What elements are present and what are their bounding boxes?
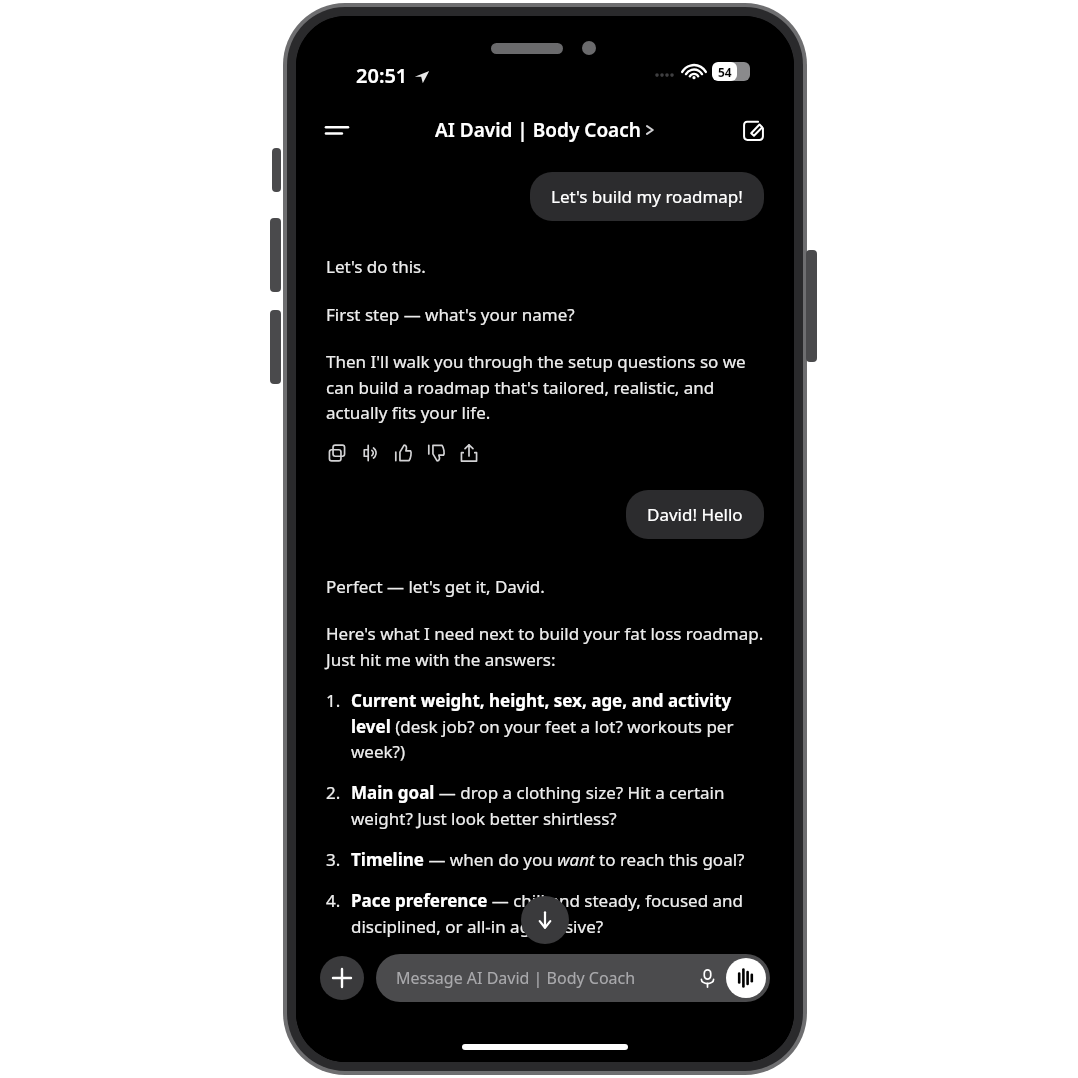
staticText: Timeline — when do you want to reach thi… <box>351 848 745 871</box>
staticText: David! Hello <box>647 503 743 526</box>
staticText: Let's build my roadmap! <box>551 185 743 208</box>
button[interactable]: New chat <box>730 107 776 153</box>
button[interactable]: AI David | Body Coach <box>435 117 655 143</box>
button[interactable]: Voice mode <box>726 958 766 998</box>
staticText: Then I'll walk you through the setup que… <box>326 350 764 424</box>
staticText: AI David | Body Coach <box>435 117 641 143</box>
button[interactable]: Share <box>458 442 480 464</box>
staticText: 3. <box>326 848 341 871</box>
staticText: Message AI David | Body Coach <box>396 967 636 989</box>
button[interactable]: Copy <box>326 442 348 464</box>
button[interactable]: Read aloud <box>359 442 381 464</box>
button[interactable]: Bad response <box>425 442 447 464</box>
staticText: 1. <box>326 689 341 712</box>
button[interactable]: Open menu <box>314 107 360 153</box>
staticText: Pace preference — chill and steady, focu… <box>351 889 764 938</box>
button[interactable]: Message AI David | Body Coach <box>376 954 770 1002</box>
staticText: Main goal — drop a clothing size? Hit a … <box>351 781 764 830</box>
button[interactable]: Let's build my roadmap! <box>530 172 764 221</box>
button[interactable]: David! Hello <box>626 490 764 539</box>
staticText: Perfect — let's get it, David. <box>326 575 545 598</box>
staticText: Let's do this. <box>326 255 426 278</box>
staticText: First step — what's your name? <box>326 303 575 326</box>
staticText: 4. <box>326 889 341 912</box>
staticText: Any history of dieting challenges I shou… <box>351 956 699 979</box>
button[interactable]: Dictate <box>690 961 724 995</box>
button[interactable]: Scroll to bottom <box>521 896 569 944</box>
staticText: 2. <box>326 781 341 804</box>
staticText: Here's what I need next to build your fa… <box>326 622 764 671</box>
staticText: 54 <box>718 64 732 80</box>
staticText: 5. <box>326 956 341 979</box>
staticText: 20:51 <box>356 62 408 89</box>
staticText: Current weight, height, sex, age, and ac… <box>351 689 764 763</box>
button[interactable]: Add attachment <box>320 956 364 1000</box>
button[interactable]: Good response <box>392 442 414 464</box>
